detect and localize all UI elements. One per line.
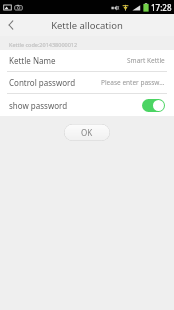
staticText: Kettle code:201438000012 <box>9 41 78 48</box>
staticText: Kettle Name <box>9 55 56 66</box>
button[interactable]: Control password <box>0 72 174 94</box>
staticText: Please enter passw... <box>101 78 165 87</box>
button[interactable]: show password <box>0 94 174 116</box>
staticText: show password <box>9 100 68 111</box>
button[interactable]: OK <box>64 124 110 141</box>
staticText: 17:28 <box>151 2 172 13</box>
button[interactable]: Kettle Name <box>0 50 174 72</box>
staticText: Smart Kettle <box>127 56 165 65</box>
button[interactable]: Back <box>0 14 22 36</box>
staticText: Control password <box>9 77 76 88</box>
staticText: Kettle allocation <box>51 19 123 32</box>
staticText: OK <box>81 127 93 138</box>
